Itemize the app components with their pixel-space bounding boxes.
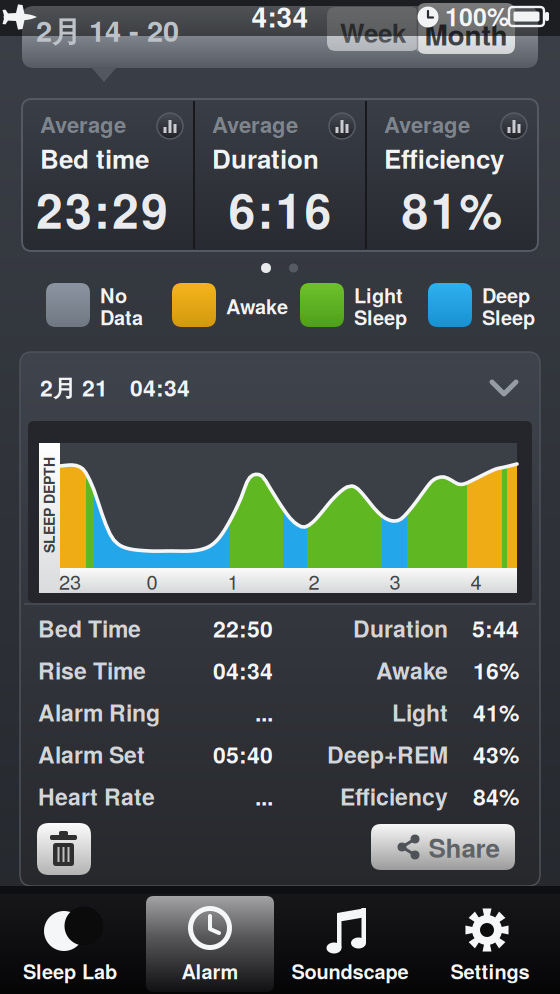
staticText: Average: [40, 108, 126, 140]
staticText: Week: [340, 13, 406, 51]
staticText: Heart Rate: [38, 779, 155, 812]
staticText: Bed Time: [38, 611, 141, 644]
button[interactable]: Graph: [500, 112, 528, 140]
button[interactable]: Week: [327, 7, 419, 51]
button[interactable]: Alarm: [140, 894, 280, 994]
button[interactable]: Settings: [420, 894, 560, 994]
staticText: SLEEP DEPTH: [1, 495, 97, 515]
staticText: Sleep: [354, 303, 407, 331]
staticText: Month: [424, 14, 507, 54]
staticText: 04:34: [130, 370, 190, 403]
staticText: Efficiency: [384, 139, 504, 177]
staticText: 41%: [473, 695, 519, 728]
staticText: Settings: [450, 957, 529, 985]
button[interactable]: Share: [371, 824, 515, 870]
staticText: Efficiency: [340, 779, 448, 812]
staticText: Awake: [226, 292, 288, 320]
button[interactable]: Graph: [328, 112, 356, 140]
staticText: 1: [227, 567, 238, 595]
staticText: 0: [146, 567, 157, 595]
staticText: Alarm Set: [38, 737, 145, 770]
staticText: Alarm Ring: [38, 695, 160, 728]
button[interactable]: Month: [417, 3, 515, 54]
button[interactable]: Graph: [156, 112, 184, 140]
staticText: 23:29: [36, 175, 168, 243]
staticText: 2月 14 - 20: [36, 9, 179, 51]
staticText: Light: [392, 695, 448, 728]
staticText: Sleep: [482, 303, 535, 331]
staticText: Sleep Lab: [23, 957, 117, 985]
button[interactable]: Collapse: [486, 374, 522, 402]
staticText: 100%: [445, 0, 509, 34]
staticText: 5:44: [472, 611, 519, 644]
staticText: ...: [255, 779, 273, 812]
staticText: 84%: [473, 779, 519, 812]
staticText: 3: [389, 567, 400, 595]
staticText: Awake: [376, 653, 448, 686]
staticText: ...: [255, 695, 273, 728]
staticText: Duration: [353, 611, 448, 644]
staticText: 2: [308, 567, 319, 595]
staticText: Average: [212, 108, 298, 140]
staticText: Bed time: [40, 139, 149, 177]
staticText: Deep: [482, 281, 530, 309]
staticText: 81%: [401, 175, 502, 243]
staticText: 4: [470, 567, 481, 595]
button[interactable]: Sleep Lab: [0, 894, 140, 994]
staticText: 05:40: [213, 737, 273, 770]
staticText: Share: [428, 828, 499, 866]
staticText: 23: [59, 567, 81, 595]
staticText: Soundscape: [291, 957, 408, 985]
staticText: Rise Time: [38, 653, 146, 686]
staticText: 22:50: [213, 611, 273, 644]
staticText: 04:34: [213, 653, 273, 686]
staticText: Data: [100, 303, 143, 331]
button[interactable]: Delete: [37, 823, 91, 875]
staticText: 2月 21: [40, 370, 108, 403]
staticText: Light: [354, 281, 403, 309]
staticText: 4:34: [251, 0, 308, 36]
staticText: Alarm: [181, 957, 238, 985]
staticText: Average: [384, 108, 470, 140]
staticText: 43%: [473, 737, 519, 770]
button[interactable]: Soundscape: [280, 894, 420, 994]
staticText: Duration: [212, 139, 319, 177]
staticText: No: [100, 281, 127, 309]
staticText: Deep+REM: [327, 737, 448, 770]
staticText: 6:16: [228, 175, 331, 243]
staticText: 16%: [473, 653, 519, 686]
